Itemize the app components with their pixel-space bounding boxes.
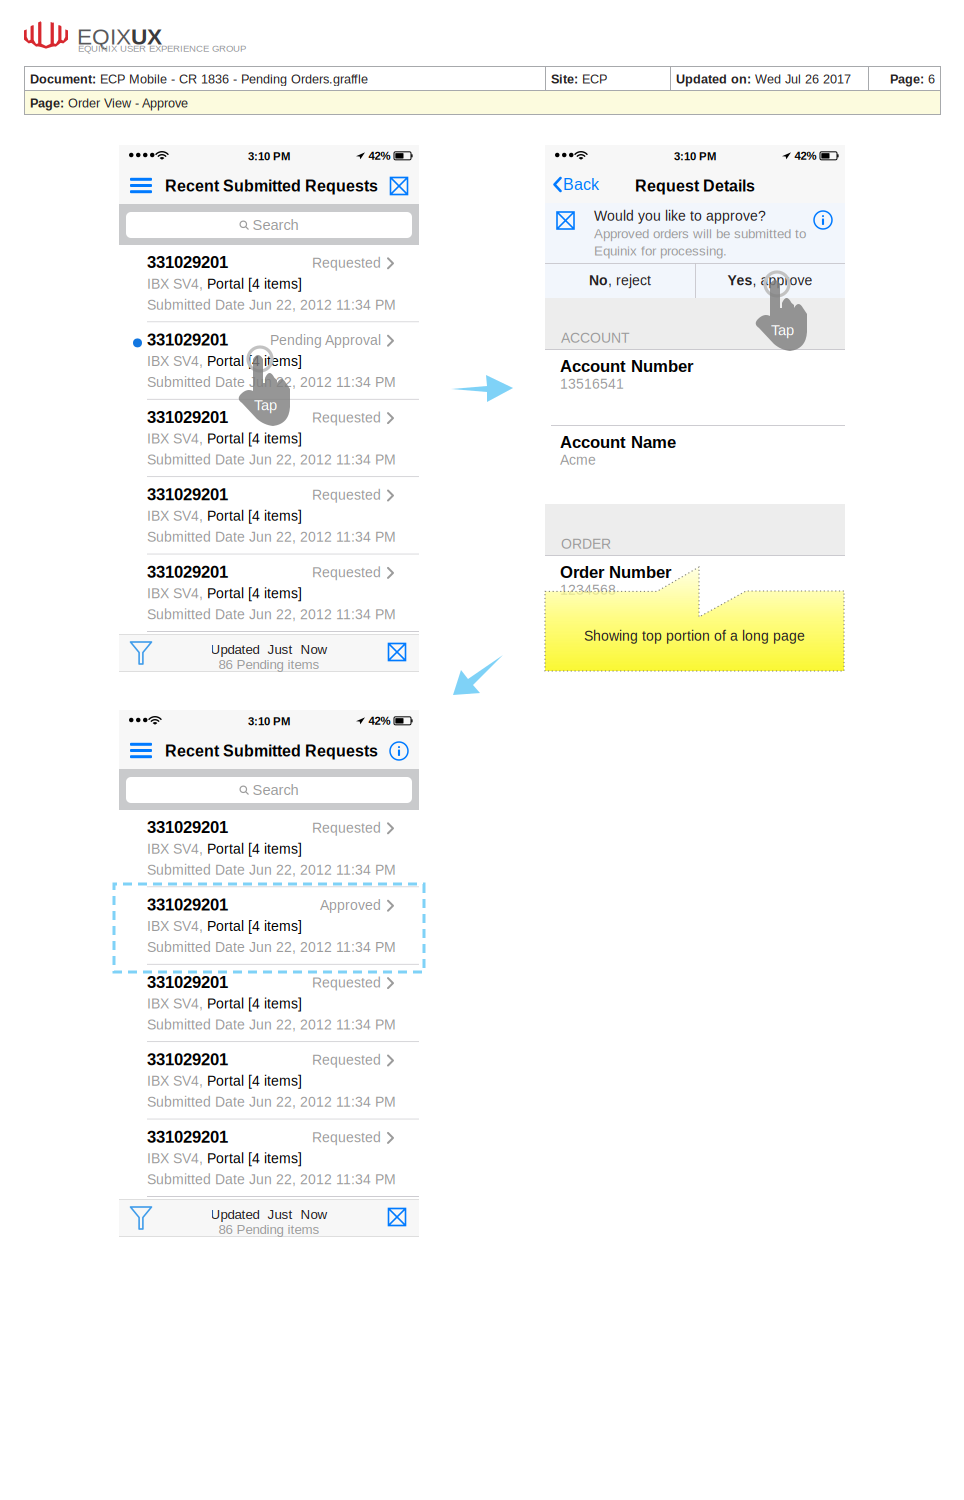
staticText: IBX SV4, [147, 586, 207, 601]
staticText: 331029201 [147, 1128, 228, 1146]
staticText: Requested [312, 487, 381, 503]
staticText: IBX SV4, [147, 996, 207, 1011]
staticText: ACCOUNT [561, 330, 630, 346]
staticText: Submitted Date Jun 22, 2012 11:34 PM [147, 374, 396, 390]
button[interactable]: 331029201 [119, 965, 419, 1042]
staticText: Back [563, 176, 599, 193]
staticText: 331029201 [147, 973, 228, 991]
staticText: Updated on: [676, 72, 751, 86]
staticText: 331029201 [147, 253, 228, 272]
staticText: Portal [4 items] [207, 841, 302, 857]
staticText: EQUINIX USER EXPERIENCE GROUP [78, 43, 246, 54]
staticText: Page: [30, 96, 64, 110]
staticText: Order Number [560, 563, 671, 582]
button[interactable]: Compose [368, 1199, 428, 1237]
button[interactable]: Menu [122, 733, 160, 768]
staticText: IBX SV4, [147, 353, 207, 369]
staticText: Submitted Date Jun 22, 2012 11:34 PM [147, 452, 396, 467]
staticText: Submitted Date Jun 22, 2012 11:34 PM [147, 529, 396, 545]
staticText: 13516541 [560, 376, 624, 392]
staticText: IBX SV4, [147, 841, 207, 857]
button[interactable]: Yes [695, 263, 845, 298]
staticText: IBX SV4, [147, 1151, 207, 1166]
button[interactable]: Compose [381, 168, 417, 204]
staticText: Order View - Approve [64, 96, 188, 110]
staticText: Site: [551, 72, 578, 86]
staticText: Acme [560, 452, 596, 468]
button[interactable]: 331029201 [119, 555, 419, 632]
staticText: 331029201 [147, 330, 228, 349]
button[interactable]: 331029201 [119, 322, 419, 400]
staticText: Recent Submitted Requests [165, 177, 378, 195]
staticText: Approved [320, 897, 381, 913]
button[interactable]: Menu [122, 168, 160, 203]
staticText: IBX SV4, [147, 918, 207, 934]
button[interactable]: 331029201 [119, 245, 419, 322]
staticText: Portal [4 items] [207, 1073, 302, 1089]
staticText: Requested [312, 1130, 381, 1145]
staticText: IBX SV4, [147, 508, 207, 524]
button[interactable]: 331029201 [119, 477, 419, 555]
staticText: 331029201 [147, 563, 228, 581]
staticText: Portal [4 items] [207, 1151, 302, 1166]
button[interactable]: Filter [111, 1199, 171, 1237]
staticText: 3:10 PM [248, 150, 290, 163]
staticText: IBX SV4, [147, 276, 207, 292]
staticText: EQIX [77, 24, 131, 49]
staticText: 42% [368, 714, 390, 727]
staticText: Submitted Date Jun 22, 2012 11:34 PM [147, 607, 396, 622]
staticText: Updated Just Now [210, 642, 327, 657]
staticText: Recent Submitted Requests [165, 742, 378, 760]
button[interactable]: 331029201 [119, 400, 419, 477]
staticText: Portal [4 items] [207, 276, 302, 292]
staticText: Requested [312, 565, 381, 580]
staticText: Page: [890, 72, 924, 86]
button[interactable]: Back [548, 167, 604, 202]
button[interactable]: More information [813, 210, 833, 230]
staticText: 3:10 PM [674, 150, 716, 163]
staticText: Requested [312, 975, 381, 990]
staticText: Portal [4 items] [207, 431, 302, 446]
staticText: Document: [30, 72, 96, 86]
staticText: Updated Just Now [210, 1207, 327, 1222]
staticText: Yes [727, 273, 752, 288]
staticText: Requested [312, 820, 381, 836]
staticText: Submitted Date Jun 22, 2012 11:34 PM [147, 1172, 396, 1187]
staticText: 1234568 [560, 582, 616, 598]
staticText: Tap [254, 397, 277, 413]
staticText: IBX SV4, [147, 431, 207, 446]
staticText: 331029201 [147, 895, 228, 914]
button[interactable]: Compose [368, 634, 428, 672]
staticText: Submitted Date Jun 22, 2012 11:34 PM [147, 1094, 396, 1110]
staticText: , reject [608, 273, 651, 288]
staticText: Search [252, 217, 298, 233]
staticText: Account Number [560, 357, 693, 376]
staticText: Submitted Date Jun 22, 2012 11:34 PM [147, 939, 396, 955]
staticText: IBX SV4, [147, 1073, 207, 1089]
staticText: Requested [312, 1052, 381, 1068]
staticText: 86 Pending items [218, 657, 319, 672]
staticText: Approved orders will be submitted to [594, 226, 806, 241]
staticText: 42% [368, 149, 390, 162]
staticText: Portal [4 items] [207, 586, 302, 601]
staticText: Requested [312, 255, 381, 271]
staticText: Submitted Date Jun 22, 2012 11:34 PM [147, 862, 396, 878]
staticText: ECP Mobile - CR 1836 - Pending Orders.gr… [96, 72, 368, 86]
button[interactable]: 331029201 [119, 1042, 419, 1120]
staticText: Submitted Date Jun 22, 2012 11:34 PM [147, 1017, 396, 1032]
button[interactable]: 331029201 [119, 810, 419, 887]
button[interactable]: Filter [111, 634, 171, 672]
button[interactable]: Information [381, 733, 417, 769]
staticText: 3:10 PM [248, 715, 290, 728]
staticText: No [589, 273, 608, 288]
staticText: Account Name [560, 433, 676, 452]
button[interactable]: 331029201 [119, 1120, 419, 1197]
staticText: 86 Pending items [218, 1222, 319, 1237]
staticText: Submitted Date Jun 22, 2012 11:34 PM [147, 297, 396, 313]
staticText: Portal [4 items] [207, 996, 302, 1011]
button[interactable]: No [545, 263, 695, 298]
staticText: 331029201 [147, 408, 228, 426]
staticText: 331029201 [147, 818, 228, 837]
button[interactable]: 331029201 [119, 887, 419, 965]
staticText: ORDER [561, 536, 611, 552]
